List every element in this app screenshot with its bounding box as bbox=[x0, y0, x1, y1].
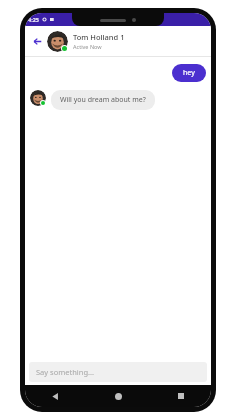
button[interactable]: Back bbox=[29, 33, 45, 49]
staticText: Will you dream about me? bbox=[60, 95, 146, 105]
staticText: Say something... bbox=[36, 367, 95, 377]
staticText: Tom Holland 1 bbox=[73, 32, 125, 42]
staticText: 4:25 bbox=[28, 16, 39, 23]
button[interactable]: Will you dream about me? bbox=[51, 90, 155, 110]
button[interactable]: Back bbox=[47, 388, 63, 404]
button[interactable]: Home bbox=[110, 388, 126, 404]
staticText: Active Now bbox=[73, 43, 102, 50]
button[interactable]: hey bbox=[172, 64, 206, 82]
button[interactable]: Say something... bbox=[29, 362, 207, 382]
button[interactable]: Tom Holland 1 bbox=[47, 26, 207, 56]
staticText: hey bbox=[183, 68, 195, 78]
button[interactable]: Recent apps bbox=[173, 388, 189, 404]
